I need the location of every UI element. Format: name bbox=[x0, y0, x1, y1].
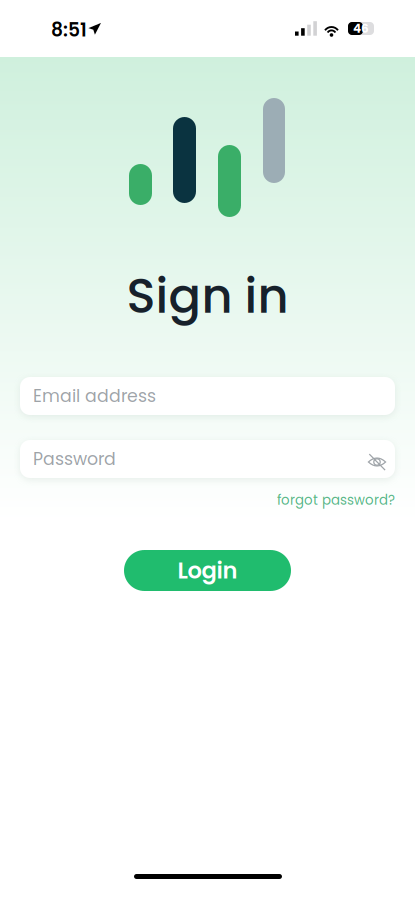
button[interactable]: Email address bbox=[20, 377, 395, 415]
staticText: Login bbox=[177, 555, 237, 586]
button[interactable]: Show password bbox=[363, 448, 391, 476]
staticText: 46 bbox=[353, 20, 369, 37]
staticText: forgot password? bbox=[277, 491, 395, 509]
staticText: Email address bbox=[33, 384, 156, 408]
button[interactable]: Password bbox=[20, 440, 395, 478]
staticText: Sign in bbox=[126, 262, 288, 330]
button[interactable]: forgot password? bbox=[240, 490, 395, 510]
staticText: Password bbox=[33, 447, 116, 471]
staticText: 8:51 bbox=[51, 17, 87, 43]
button[interactable]: Login bbox=[124, 550, 291, 591]
